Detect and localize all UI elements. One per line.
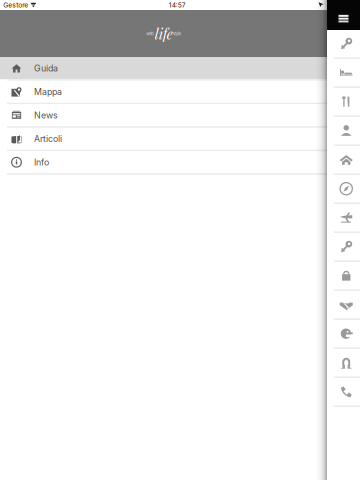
button[interactable]: Articoli <box>0 128 327 151</box>
button[interactable]: Bellezza <box>327 349 360 378</box>
button[interactable]: Esplora <box>327 175 360 204</box>
button[interactable]: Guida <box>0 57 327 81</box>
staticText: News <box>34 110 58 120</box>
staticText: web <box>146 31 154 36</box>
button[interactable]: Case <box>327 146 360 175</box>
button[interactable]: Mappa <box>0 81 327 104</box>
button[interactable]: Hotel <box>327 59 360 88</box>
button[interactable]: Partner <box>327 291 360 320</box>
button[interactable]: Affitti <box>327 30 360 59</box>
button[interactable]: Eventi <box>327 320 360 349</box>
staticText: 14:57 <box>169 1 186 9</box>
staticText: style <box>173 31 181 36</box>
staticText: Mappa <box>34 86 62 97</box>
button[interactable]: Sicurezza <box>327 262 360 291</box>
button[interactable]: Contatti <box>327 378 360 407</box>
button[interactable]: Viaggi <box>327 204 360 233</box>
button[interactable]: News <box>0 104 327 128</box>
button[interactable]: Servizi <box>327 233 360 262</box>
button[interactable]: Ristoranti <box>327 88 360 117</box>
staticText: life <box>155 24 173 43</box>
staticText: Articoli <box>34 133 62 144</box>
button[interactable]: Persone <box>327 117 360 146</box>
staticText: Info <box>34 157 49 167</box>
button[interactable]: Menu <box>327 0 360 30</box>
button[interactable]: Info <box>0 151 327 175</box>
staticText: Gestore <box>3 1 28 9</box>
staticText: Guida <box>34 63 58 73</box>
